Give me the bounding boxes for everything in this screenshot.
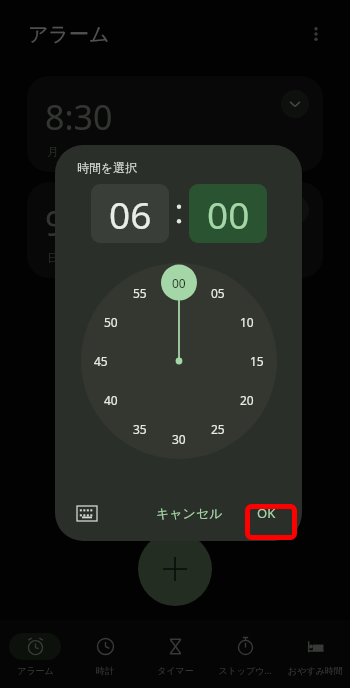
staticText: OK <box>257 504 276 522</box>
button[interactable]: Expand alarm <box>281 90 309 118</box>
button[interactable]: 45 <box>86 346 116 376</box>
button[interactable]: アラーム <box>0 620 70 688</box>
staticText: 15 <box>250 353 264 369</box>
staticText: 月、火、水、木、金 <box>47 144 155 159</box>
staticText: 10 <box>240 314 254 330</box>
button[interactable]: Switch to text input <box>69 495 105 531</box>
button[interactable]: 15 <box>242 346 272 376</box>
button[interactable]: 05 <box>203 278 233 308</box>
staticText: ストップウ… <box>218 664 272 676</box>
staticText: 00 <box>207 189 250 239</box>
staticText: 日、土 <box>47 250 83 265</box>
button[interactable]: Add alarm <box>138 532 212 606</box>
button[interactable]: 8:30 <box>27 76 323 172</box>
button[interactable]: 55 <box>125 278 155 308</box>
staticText: 8:30 <box>45 94 113 140</box>
staticText: 05 <box>211 285 225 301</box>
staticText: 35 <box>133 421 147 437</box>
button[interactable]: 06 <box>91 184 169 243</box>
staticText: 40 <box>104 392 118 408</box>
button[interactable]: OK <box>243 496 290 530</box>
staticText: タイマー <box>157 665 194 676</box>
button[interactable]: 35 <box>125 414 155 444</box>
button[interactable]: タイマー <box>140 620 210 688</box>
staticText: アラーム <box>17 665 54 676</box>
staticText: 55 <box>133 285 147 301</box>
button[interactable]: 30 <box>164 424 194 454</box>
button[interactable]: Expand alarm <box>281 196 309 224</box>
staticText: 00 <box>172 275 186 291</box>
button[interactable]: 9:00 <box>27 182 323 278</box>
staticText: おやすみ時間 <box>288 665 343 676</box>
staticText: 20 <box>240 392 254 408</box>
button[interactable]: キャンセル <box>146 497 233 529</box>
staticText: 50 <box>104 314 118 330</box>
staticText: 45 <box>94 353 108 369</box>
staticText: 30 <box>172 431 186 447</box>
staticText: 時間を選択 <box>77 160 138 175</box>
button[interactable]: 時計 <box>70 620 140 688</box>
button[interactable]: おやすみ時間 <box>280 620 350 688</box>
staticText: 時計 <box>96 665 114 676</box>
button[interactable]: 40 <box>96 385 126 415</box>
staticText: キャンセル <box>156 505 223 521</box>
button[interactable]: 50 <box>96 307 126 337</box>
button[interactable]: ストップウ… <box>210 620 280 688</box>
button[interactable]: 10 <box>232 307 262 337</box>
button[interactable]: 00 <box>164 268 194 298</box>
button[interactable]: 25 <box>203 414 233 444</box>
button[interactable]: 00 <box>189 184 267 243</box>
button[interactable]: 20 <box>232 385 262 415</box>
button[interactable]: More options <box>298 16 334 52</box>
staticText: 06 <box>109 189 152 239</box>
staticText: 9:00 <box>45 200 113 246</box>
staticText: アラーム <box>28 22 110 47</box>
staticText: 25 <box>211 421 225 437</box>
